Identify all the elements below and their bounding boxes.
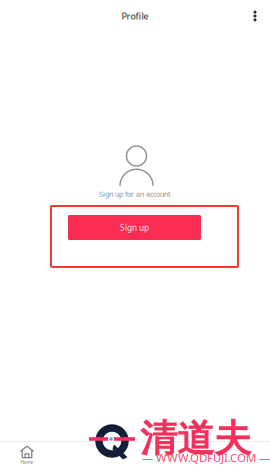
- staticText: 清道夫: [140, 415, 251, 462]
- staticText: Sign up for an account: [99, 189, 171, 199]
- button[interactable]: Sign up: [68, 215, 201, 240]
- button[interactable]: Home: [0, 444, 54, 468]
- staticText: — WWW.QDFUJI.COM —: [142, 450, 270, 465]
- button[interactable]: More options: [242, 3, 268, 29]
- staticText: Home: [20, 459, 33, 465]
- staticText: Profile: [121, 10, 148, 22]
- staticText: Sign up: [120, 222, 149, 233]
